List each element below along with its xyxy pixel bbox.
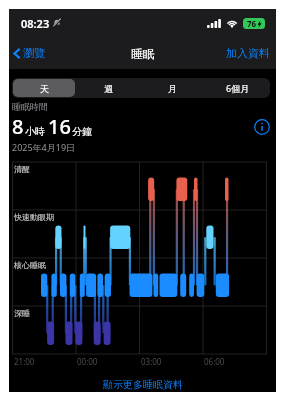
staticText: 週	[104, 83, 113, 94]
button[interactable]: 瀏覽	[11, 42, 47, 64]
staticText: 2025年4月19日	[12, 141, 76, 153]
staticText: 核心睡眠	[14, 260, 46, 270]
staticText: 清醒	[14, 164, 30, 174]
staticText: 8	[12, 113, 24, 140]
staticText: 加入資料	[226, 46, 270, 60]
staticText: 6個月	[226, 82, 250, 94]
button[interactable]: 顯示更多睡眠資料	[99, 375, 187, 394]
staticText: 睡眠	[131, 46, 155, 61]
staticText: 06:00	[204, 356, 225, 367]
staticText: 瀏覽	[23, 46, 45, 60]
staticText: 21:00	[14, 356, 35, 367]
staticText: 天	[40, 83, 49, 94]
staticText: 睡眠時間	[12, 101, 48, 112]
button[interactable]: 6個月	[206, 79, 269, 97]
staticText: 00:00	[77, 356, 98, 367]
staticText: 小時	[25, 125, 45, 138]
staticText: 快速動眼期	[14, 212, 54, 222]
staticText: 08:23	[21, 16, 50, 31]
button[interactable]: 週	[77, 79, 139, 97]
staticText: 76	[247, 18, 257, 29]
staticText: 月	[168, 83, 177, 94]
button[interactable]: 月	[141, 79, 204, 97]
staticText: 16	[48, 113, 71, 140]
staticText: 深睡	[14, 308, 30, 318]
staticText: 03:00	[141, 356, 162, 367]
button[interactable]: 加入資料	[224, 42, 272, 64]
button[interactable]: Info	[254, 119, 270, 135]
staticText: 顯示更多睡眠資料	[103, 378, 183, 391]
staticText: 分鐘	[72, 125, 92, 138]
button[interactable]: 天	[13, 79, 75, 97]
